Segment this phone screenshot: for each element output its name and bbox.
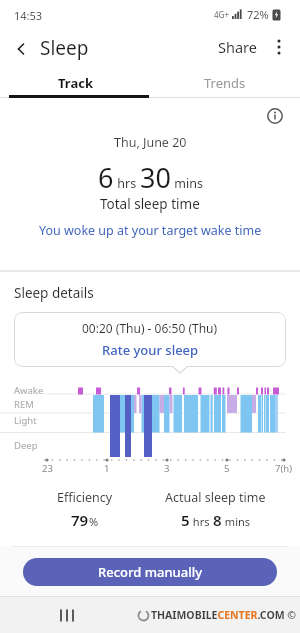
staticText: hrs — [114, 175, 140, 192]
staticText: Sleep — [40, 35, 89, 61]
staticText: Thu, June 20 — [114, 134, 187, 151]
staticText: 7(h) — [275, 462, 293, 475]
staticText: 5 — [224, 462, 230, 475]
staticText: Rate your sleep — [102, 341, 199, 359]
staticText: Light — [14, 414, 37, 427]
staticText: 14:53 — [14, 8, 43, 23]
staticText: Deep — [14, 439, 38, 452]
button[interactable]: Efficiency — [15, 489, 155, 530]
staticText: % — [89, 514, 99, 529]
staticText: 3 — [164, 462, 170, 475]
staticText: Actual sleep time — [165, 489, 266, 506]
button[interactable]: Track — [0, 68, 150, 98]
button[interactable]: 00:20 (Thu) - 06:50 (Thu) — [14, 312, 286, 367]
staticText: 79 — [71, 510, 89, 530]
staticText: 4G+ — [214, 9, 229, 20]
staticText: REM — [14, 398, 34, 411]
staticText: 8 — [213, 510, 222, 530]
staticText: 5 — [181, 510, 190, 530]
staticText: 00:20 (Thu) - 06:50 (Thu) — [82, 320, 218, 336]
button[interactable]: Share — [210, 34, 265, 60]
staticText: Awake — [14, 384, 44, 397]
button[interactable]: Actual sleep time — [145, 489, 285, 530]
staticText: Sleep details — [14, 284, 94, 302]
button[interactable]: Trends — [150, 68, 300, 98]
staticText: 23 — [42, 462, 53, 475]
staticText: 1 — [104, 462, 110, 475]
staticText: Share — [218, 37, 257, 57]
staticText: hrs — [190, 514, 213, 529]
staticText: Total sleep time — [100, 195, 200, 213]
button[interactable] — [262, 103, 288, 129]
staticText: Trends — [204, 74, 246, 92]
staticText: Efficiency — [57, 489, 113, 506]
button[interactable] — [8, 36, 34, 62]
staticText: You woke up at your target wake time — [39, 222, 262, 239]
staticText: 6 — [98, 159, 114, 196]
staticText: 72% — [247, 7, 269, 22]
staticText: mins — [222, 514, 251, 529]
staticText: THAIMOBILECENTER.COM © — [151, 608, 297, 622]
staticText: Track — [58, 74, 93, 92]
staticText: Record manually — [98, 563, 203, 581]
staticText: mins — [171, 175, 203, 192]
staticText: 30 — [140, 159, 171, 196]
button[interactable] — [52, 600, 82, 630]
button[interactable] — [268, 34, 290, 60]
button[interactable]: Record manually — [23, 558, 277, 586]
